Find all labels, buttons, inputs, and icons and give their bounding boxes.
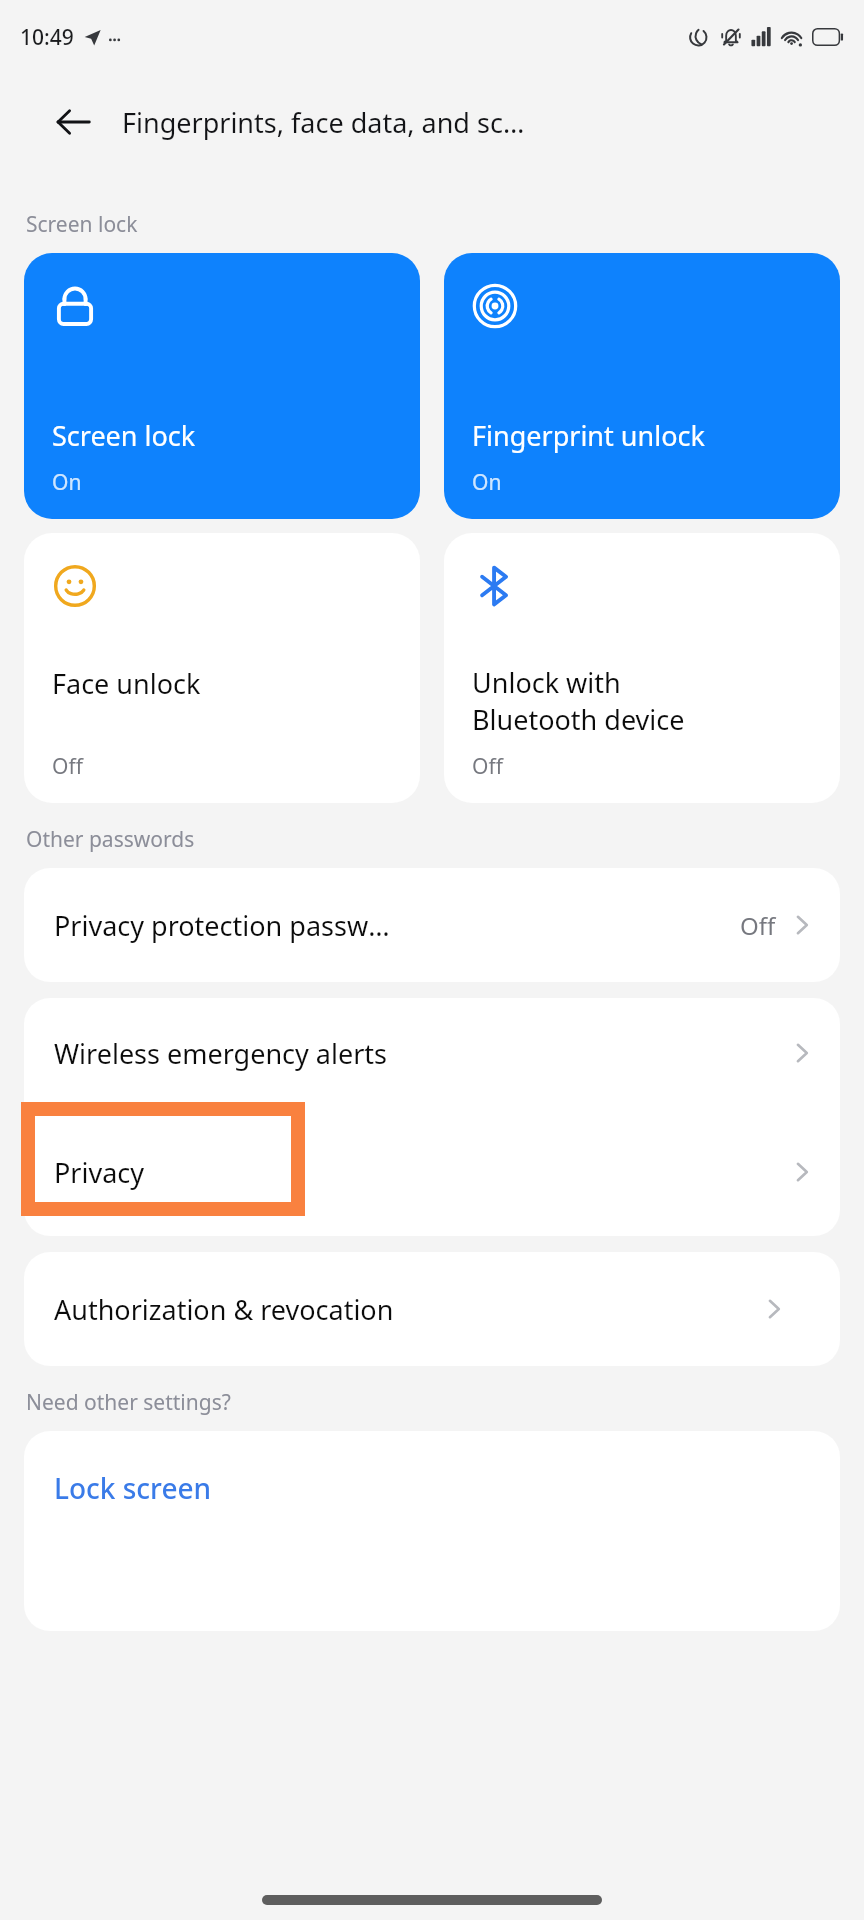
staticText: Privacy protection password	[54, 907, 397, 944]
staticText: Screen lock	[26, 210, 138, 239]
staticText: Need other settings?	[26, 1388, 231, 1417]
button[interactable]: Wireless emergency alerts	[24, 998, 840, 1108]
button[interactable]: Fingerprint unlock	[444, 253, 840, 519]
staticText: Screen lock	[52, 417, 196, 454]
staticText: On	[52, 468, 82, 497]
staticText: Wireless emergency alerts	[54, 1035, 388, 1072]
button[interactable]: Authorization & revocation	[24, 1252, 840, 1366]
staticText: Off	[472, 752, 503, 781]
staticText: Privacy	[54, 1154, 145, 1191]
staticText: 10:49	[20, 23, 74, 52]
button[interactable]: Screen lock	[24, 253, 420, 519]
staticText: Fingerprints, face data, and sc…	[122, 104, 525, 141]
staticText: Lock screen	[54, 1469, 212, 1507]
staticText: Unlock with	[472, 664, 621, 701]
staticText: On	[472, 468, 502, 497]
staticText: Off	[52, 752, 83, 781]
staticText: Fingerprint unlock	[472, 417, 705, 454]
button[interactable]: Back	[46, 95, 100, 149]
button[interactable]: Lock screen	[24, 1431, 840, 1631]
button[interactable]: Unlock with	[444, 533, 840, 803]
button[interactable]: Privacy	[24, 1108, 840, 1236]
staticText: Face unlock	[52, 665, 201, 702]
staticText: Other passwords	[26, 825, 195, 854]
staticText: Bluetooth device	[472, 701, 685, 738]
button[interactable]: Face unlock	[24, 533, 420, 803]
staticText: Authorization & revocation	[54, 1291, 394, 1328]
button[interactable]: Privacy protection password	[24, 868, 840, 982]
staticText: Off	[740, 909, 776, 942]
